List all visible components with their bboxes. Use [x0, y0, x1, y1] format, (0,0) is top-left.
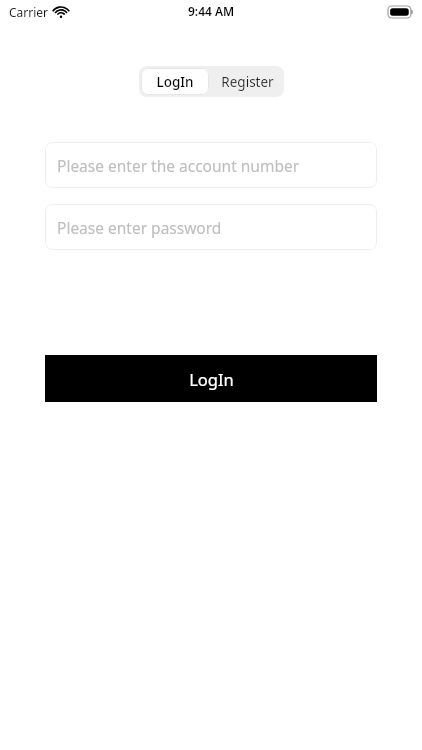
button[interactable]: Please enter the account number: [45, 142, 377, 188]
button[interactable]: Register: [211, 66, 284, 97]
staticText: Carrier: [9, 4, 49, 20]
staticText: LogIn: [189, 368, 234, 390]
button[interactable]: Please enter password: [45, 204, 377, 250]
staticText: Please enter password: [57, 217, 222, 238]
button[interactable]: LogIn: [45, 355, 377, 402]
button[interactable]: LogIn: [141, 68, 209, 95]
staticText: Register: [221, 73, 274, 91]
staticText: LogIn: [156, 73, 194, 91]
staticText: Please enter the account number: [57, 155, 300, 176]
staticText: 9:44 AM: [188, 3, 235, 19]
